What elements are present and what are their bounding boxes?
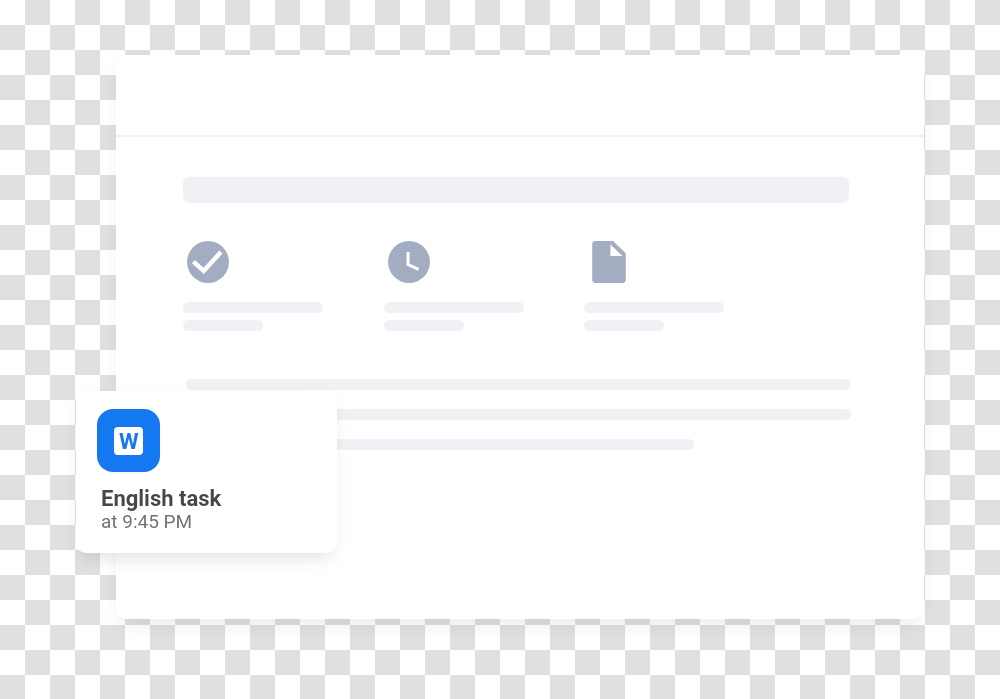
other: Document — [588, 241, 630, 283]
other: Scheduled — [388, 241, 430, 283]
button[interactable]: Word document app — [76, 391, 337, 553]
other: Completed — [187, 241, 229, 283]
staticText: W — [119, 428, 139, 454]
other: Word document app — [97, 409, 160, 472]
staticText: at 9:45 PM — [101, 510, 193, 532]
staticText: English task — [101, 486, 222, 512]
